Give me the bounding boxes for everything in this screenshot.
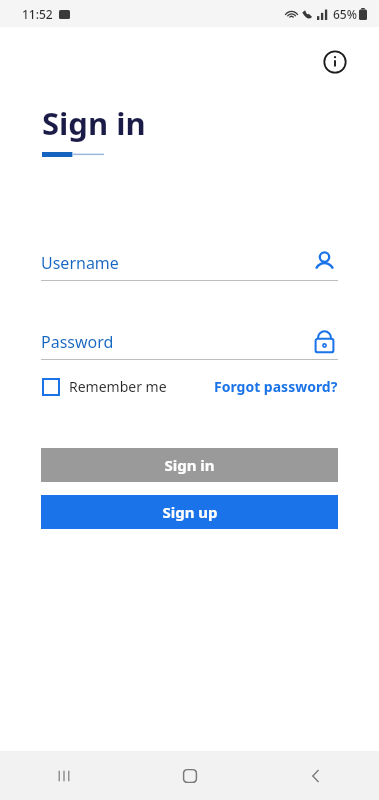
button[interactable]: Home: [127, 751, 253, 800]
staticText: Sign in: [164, 455, 215, 475]
button[interactable]: Back: [253, 751, 379, 800]
button[interactable]: Username field: [41, 249, 338, 281]
staticText: 65%: [333, 6, 357, 22]
staticText: Sign in: [42, 102, 146, 144]
staticText: 11:52: [22, 6, 53, 22]
button[interactable]: Information: [315, 42, 355, 82]
button[interactable]: Recent apps: [0, 751, 127, 800]
staticText: Username: [41, 252, 119, 274]
button[interactable]: Password field: [41, 328, 338, 360]
staticText: Sign up: [162, 502, 218, 522]
button[interactable]: Remember me: [42, 377, 167, 396]
staticText: Forgot password?: [214, 377, 338, 396]
button[interactable]: Sign in: [41, 448, 338, 482]
button[interactable]: Sign up: [41, 495, 338, 529]
staticText: Password: [41, 331, 114, 353]
staticText: Remember me: [69, 377, 167, 396]
button[interactable]: Forgot password?: [214, 377, 338, 396]
